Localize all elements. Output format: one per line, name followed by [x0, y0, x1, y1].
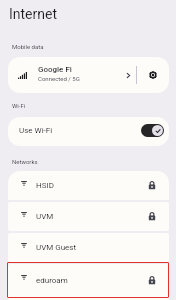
button[interactable]: UVM Guest: [8, 233, 169, 262]
staticText: UVM Guest: [36, 243, 77, 252]
staticText: Networks: [12, 158, 38, 165]
button[interactable]: Google Fi: [8, 57, 136, 93]
other: Secured network: [148, 212, 156, 221]
staticText: Connected / 5G: [38, 75, 80, 82]
button[interactable]: HSID: [8, 171, 169, 200]
staticText: Use Wi-Fi: [19, 126, 53, 135]
staticText: HSID: [36, 181, 54, 190]
button[interactable]: UVM: [8, 202, 169, 231]
staticText: Internet: [9, 6, 58, 22]
staticText: Wi-Fi: [12, 102, 26, 109]
staticText: UVM: [36, 212, 54, 221]
button[interactable]: eduroam: [8, 264, 169, 300]
staticText: eduroam: [36, 276, 68, 285]
other: Secured network: [148, 276, 156, 285]
button[interactable]: Use Wi-Fi: [8, 117, 169, 146]
staticText: Mobile data: [12, 43, 44, 50]
other: Secured network: [148, 181, 156, 190]
staticText: Google Fi: [38, 65, 72, 74]
button[interactable]: Mobile network settings: [137, 57, 169, 93]
